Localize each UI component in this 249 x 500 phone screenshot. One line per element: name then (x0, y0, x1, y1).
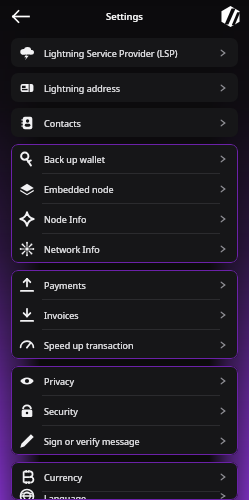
button[interactable]: Network Info (11, 234, 238, 263)
button[interactable]: Node Info (11, 204, 238, 233)
staticText: Lightning address (44, 82, 121, 94)
button[interactable]: Currency (11, 462, 238, 491)
staticText: Settings (106, 10, 143, 23)
button[interactable]: App logo (217, 3, 243, 29)
button[interactable]: Security (11, 396, 238, 425)
staticText: Node Info (44, 213, 87, 225)
button[interactable]: Invoices (11, 300, 238, 329)
staticText: Speed up transaction (44, 339, 134, 351)
button[interactable]: Language (11, 492, 238, 500)
staticText: Embedded node (44, 183, 114, 195)
staticText: Network Info (44, 243, 100, 255)
staticText: Privacy (44, 375, 75, 387)
staticText: Security (44, 405, 78, 417)
button[interactable]: Back up wallet (11, 144, 238, 173)
button[interactable]: Contacts (11, 108, 238, 137)
staticText: Sign or verify message (44, 435, 140, 447)
staticText: Lightning Service Provider (LSP) (44, 47, 178, 59)
button[interactable]: Lightning Service Provider (LSP) (11, 38, 238, 67)
button[interactable]: Payments (11, 270, 238, 299)
button[interactable]: Embedded node (11, 174, 238, 203)
staticText: Invoices (44, 309, 79, 321)
staticText: Payments (44, 279, 86, 291)
button[interactable]: Speed up transaction (11, 330, 238, 359)
staticText: Currency (44, 471, 83, 483)
staticText: Contacts (44, 117, 81, 129)
button[interactable]: Privacy (11, 366, 238, 395)
button[interactable]: Back (6, 2, 34, 30)
button[interactable]: Lightning address (11, 73, 238, 102)
staticText: Language (44, 492, 87, 500)
button[interactable]: Sign or verify message (11, 426, 238, 455)
staticText: Back up wallet (44, 153, 105, 165)
